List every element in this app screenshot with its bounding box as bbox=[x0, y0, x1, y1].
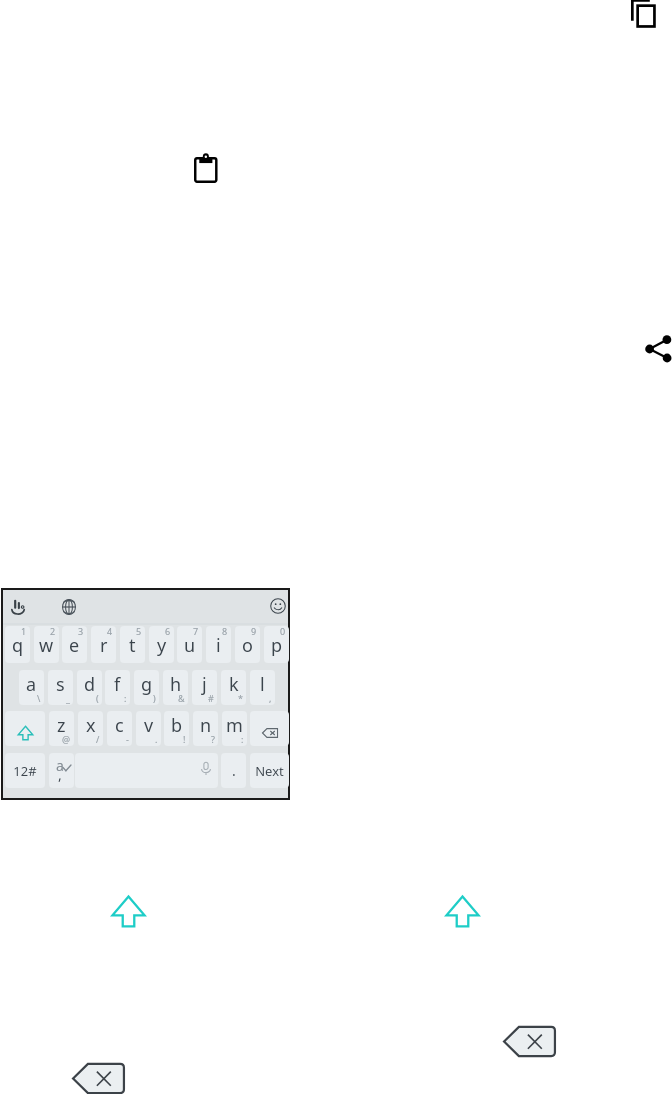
staticText: 6 bbox=[165, 626, 171, 637]
button[interactable]: f bbox=[105, 670, 130, 705]
staticText: a bbox=[56, 756, 64, 775]
staticText: ) bbox=[153, 692, 156, 704]
staticText: h bbox=[170, 672, 182, 697]
button[interactable]: Backspace bbox=[72, 1063, 125, 1094]
button[interactable]: 0 bbox=[264, 626, 289, 663]
staticText: # bbox=[208, 692, 214, 704]
staticText: 3 bbox=[78, 626, 84, 637]
staticText: / bbox=[96, 733, 100, 745]
staticText: ! bbox=[183, 733, 186, 745]
button[interactable]: Share bbox=[644, 333, 672, 365]
button[interactable]: Paste bbox=[192, 152, 220, 184]
staticText: 8 bbox=[222, 626, 228, 637]
button[interactable]: Copy bbox=[629, 0, 658, 29]
staticText: , bbox=[269, 692, 272, 704]
button[interactable]: 1 bbox=[5, 626, 30, 663]
staticText: 9 bbox=[251, 626, 257, 637]
button[interactable]: 9 bbox=[235, 626, 260, 663]
staticText: _ bbox=[66, 692, 70, 704]
staticText: d bbox=[84, 672, 96, 697]
button[interactable]: n bbox=[193, 711, 218, 746]
button[interactable]: m bbox=[222, 711, 247, 746]
staticText: g bbox=[141, 672, 153, 697]
button[interactable]: c bbox=[107, 711, 132, 746]
staticText: l bbox=[260, 672, 265, 697]
staticText: 4 bbox=[107, 626, 113, 637]
staticText: 0 bbox=[280, 626, 286, 637]
staticText: * bbox=[238, 692, 243, 704]
button[interactable]: Backspace bbox=[503, 1026, 556, 1057]
button[interactable]: g bbox=[134, 670, 159, 705]
button[interactable]: x bbox=[78, 711, 103, 746]
button[interactable]: a bbox=[19, 670, 44, 705]
button[interactable]: . bbox=[221, 753, 246, 788]
staticText: m bbox=[226, 713, 243, 738]
staticText: , bbox=[58, 765, 62, 784]
staticText: ( bbox=[96, 692, 99, 704]
staticText: e bbox=[69, 633, 80, 658]
button[interactable]: Shift bbox=[112, 896, 145, 927]
staticText: p bbox=[271, 633, 283, 658]
button[interactable]: Handwriting bbox=[11, 599, 26, 615]
staticText: v bbox=[144, 713, 154, 738]
button[interactable]: Next bbox=[250, 753, 289, 788]
staticText: \ bbox=[37, 692, 41, 704]
staticText: y bbox=[157, 633, 167, 658]
staticText: o bbox=[242, 633, 253, 658]
button[interactable]: b bbox=[164, 711, 189, 746]
staticText: w bbox=[39, 633, 54, 658]
button[interactable]: 2 bbox=[34, 626, 59, 663]
staticText: @ bbox=[62, 733, 71, 745]
staticText: k bbox=[229, 672, 239, 697]
button[interactable]: Language bbox=[62, 599, 76, 615]
staticText: f bbox=[114, 672, 121, 697]
button[interactable]: 8 bbox=[206, 626, 231, 663]
staticText: z bbox=[57, 713, 66, 738]
staticText: a bbox=[26, 672, 37, 697]
staticText: & bbox=[178, 692, 185, 704]
button[interactable]: 3 bbox=[62, 626, 87, 663]
staticText: u bbox=[184, 633, 196, 658]
button[interactable]: 12# bbox=[5, 753, 45, 788]
staticText: 5 bbox=[136, 626, 142, 637]
button[interactable]: Shift bbox=[446, 896, 479, 927]
staticText: q bbox=[12, 633, 24, 658]
staticText: j bbox=[202, 672, 207, 697]
button[interactable]: h bbox=[163, 670, 188, 705]
staticText: i bbox=[216, 633, 221, 658]
button[interactable]: v bbox=[136, 711, 161, 746]
staticText: r bbox=[100, 633, 108, 658]
button[interactable]: 7 bbox=[177, 626, 202, 663]
staticText: : bbox=[124, 692, 127, 704]
button[interactable]: Space bbox=[75, 753, 218, 788]
staticText: - bbox=[126, 733, 129, 745]
staticText: . bbox=[232, 761, 236, 780]
button[interactable]: 5 bbox=[120, 626, 145, 663]
button[interactable]: d bbox=[77, 670, 102, 705]
staticText: n bbox=[200, 713, 212, 738]
button[interactable]: k bbox=[221, 670, 246, 705]
staticText: b bbox=[171, 713, 183, 738]
staticText: 1 bbox=[21, 626, 27, 637]
button[interactable]: Backspace bbox=[250, 711, 289, 746]
button[interactable]: l bbox=[250, 670, 275, 705]
staticText: : bbox=[241, 733, 244, 745]
staticText: x bbox=[86, 713, 96, 738]
staticText: 7 bbox=[193, 626, 199, 637]
staticText: t bbox=[129, 633, 136, 658]
button[interactable]: 4 bbox=[91, 626, 116, 663]
button[interactable]: s bbox=[48, 670, 73, 705]
button[interactable]: a bbox=[49, 753, 74, 788]
button[interactable]: Emoji bbox=[270, 598, 286, 614]
staticText: 2 bbox=[50, 626, 56, 637]
staticText: . bbox=[155, 733, 158, 745]
staticText: 12# bbox=[13, 762, 37, 780]
button[interactable]: 6 bbox=[149, 626, 174, 663]
staticText: ? bbox=[211, 733, 215, 745]
staticText: s bbox=[56, 672, 65, 697]
button[interactable]: Shift bbox=[5, 711, 45, 746]
staticText: Next bbox=[255, 762, 284, 780]
button[interactable]: z bbox=[49, 711, 74, 746]
button[interactable]: j bbox=[192, 670, 217, 705]
staticText: c bbox=[115, 713, 124, 738]
